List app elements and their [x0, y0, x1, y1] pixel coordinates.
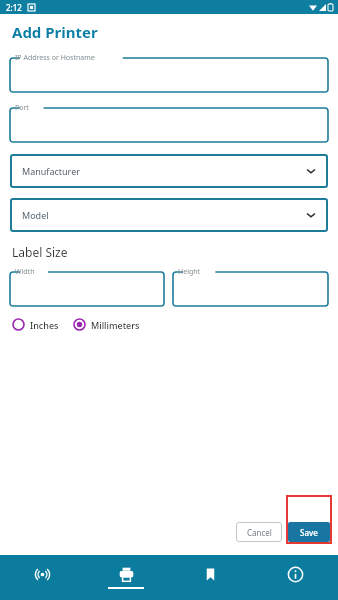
button[interactable]: Width — [10, 266, 164, 306]
staticText: Port — [15, 103, 29, 113]
button[interactable]: Port — [10, 102, 328, 142]
other: Expand Manufacturer — [306, 166, 316, 176]
staticText: Cancel — [247, 527, 272, 538]
staticText: Width — [15, 267, 35, 277]
button[interactable]: Printers — [84, 555, 168, 600]
button[interactable]: Cancel — [236, 522, 282, 542]
staticText: Inches — [30, 319, 59, 331]
button[interactable]: Millimeters — [71, 316, 142, 333]
staticText: Save — [300, 527, 318, 538]
staticText: 2:12 — [6, 2, 22, 13]
button[interactable]: Broadcast — [0, 555, 84, 600]
staticText: Height — [178, 267, 201, 277]
button[interactable]: Height — [173, 266, 328, 306]
button[interactable]: Save — [288, 522, 330, 542]
other: Expand Model — [306, 210, 316, 220]
staticText: Model — [22, 209, 49, 221]
button[interactable]: Bookmarks — [168, 555, 253, 600]
button[interactable]: Manufacturer — [10, 154, 328, 188]
button[interactable]: Info — [253, 555, 338, 600]
staticText: Millimeters — [91, 319, 140, 331]
button[interactable]: Inches — [10, 316, 61, 333]
button[interactable]: Model — [10, 198, 328, 232]
staticText: IP Address or Hostname — [15, 53, 95, 63]
staticText: Manufacturer — [22, 165, 80, 177]
staticText: Label Size — [12, 244, 68, 260]
staticText: Add Printer — [12, 22, 98, 42]
button[interactable]: IP Address or Hostname — [10, 52, 328, 92]
